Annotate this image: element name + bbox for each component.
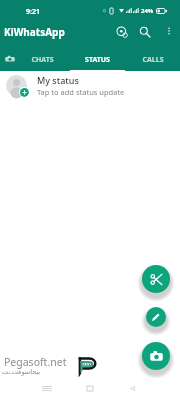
staticText: My status bbox=[37, 74, 79, 86]
staticText: CHATS bbox=[31, 55, 54, 65]
button[interactable]: Camera bbox=[110, 20, 134, 44]
button[interactable]: My status bbox=[0, 71, 180, 99]
button[interactable]: Recents bbox=[32, 381, 62, 396]
button[interactable]: CHATS bbox=[14, 49, 70, 71]
button[interactable]: Camera status bbox=[142, 342, 170, 370]
staticText: STATUS bbox=[85, 55, 110, 65]
button[interactable]: Home bbox=[75, 381, 105, 396]
staticText: CALLS bbox=[142, 55, 164, 65]
staticText: Tap to add status update bbox=[37, 87, 125, 97]
staticText: Pegasoft.net bbox=[4, 355, 67, 369]
staticText: 9:21 bbox=[26, 7, 40, 17]
staticText: KiWhatsApp bbox=[4, 25, 65, 39]
staticText: بيجاسوفت.نت bbox=[2, 367, 41, 376]
button[interactable]: More options bbox=[158, 20, 180, 42]
button[interactable]: Search bbox=[133, 20, 157, 44]
button[interactable]: CALLS bbox=[125, 49, 180, 71]
button[interactable]: Camera tab bbox=[0, 49, 14, 71]
staticText: 24% bbox=[141, 7, 154, 14]
button[interactable]: STATUS bbox=[70, 49, 125, 71]
button[interactable]: Cut bbox=[142, 265, 170, 293]
button[interactable]: Back bbox=[117, 381, 147, 396]
button[interactable]: Write status bbox=[146, 307, 166, 327]
